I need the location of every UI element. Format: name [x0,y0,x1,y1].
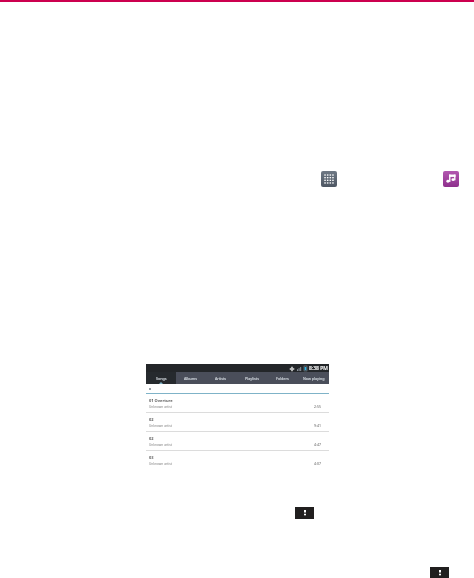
button[interactable]: Artists [206,372,236,384]
button[interactable]: Apps [321,171,337,187]
button[interactable]: Music [443,171,459,187]
staticText: 02 [149,436,154,441]
staticText: 4:07 [314,461,321,466]
staticText: 03 [149,455,154,460]
button[interactable]: 01 Overture [149,394,321,412]
button[interactable]: Playlists [236,372,267,384]
staticText: Now playing [303,376,325,381]
staticText: Artists [215,376,227,381]
button[interactable]: 02 [149,413,321,431]
staticText: Playlists [245,376,259,381]
button[interactable]: 03 [149,451,321,469]
button[interactable]: 02 [149,432,321,450]
staticText: Unknown artist [149,443,172,447]
staticText: 4:47 [314,442,321,447]
staticText: 8:38 PM [309,365,328,372]
button[interactable]: Menu [430,567,449,578]
staticText: Unknown artist [149,424,172,428]
button[interactable]: Albums [176,372,206,384]
staticText: 01 Overture [149,398,173,403]
button[interactable]: Folders [267,372,298,384]
staticText: Unknown artist [149,405,172,409]
staticText: Unknown artist [149,462,172,466]
button[interactable]: Menu [295,507,314,519]
staticText: 02 [149,417,154,422]
button[interactable]: Songs [146,372,176,384]
staticText: 9:41 [314,423,321,428]
button[interactable]: Now playing [298,372,329,384]
staticText: Songs [156,376,167,381]
staticText: Folders [276,376,289,381]
staticText: Albums [184,376,198,381]
staticText: 2:55 [314,404,321,409]
